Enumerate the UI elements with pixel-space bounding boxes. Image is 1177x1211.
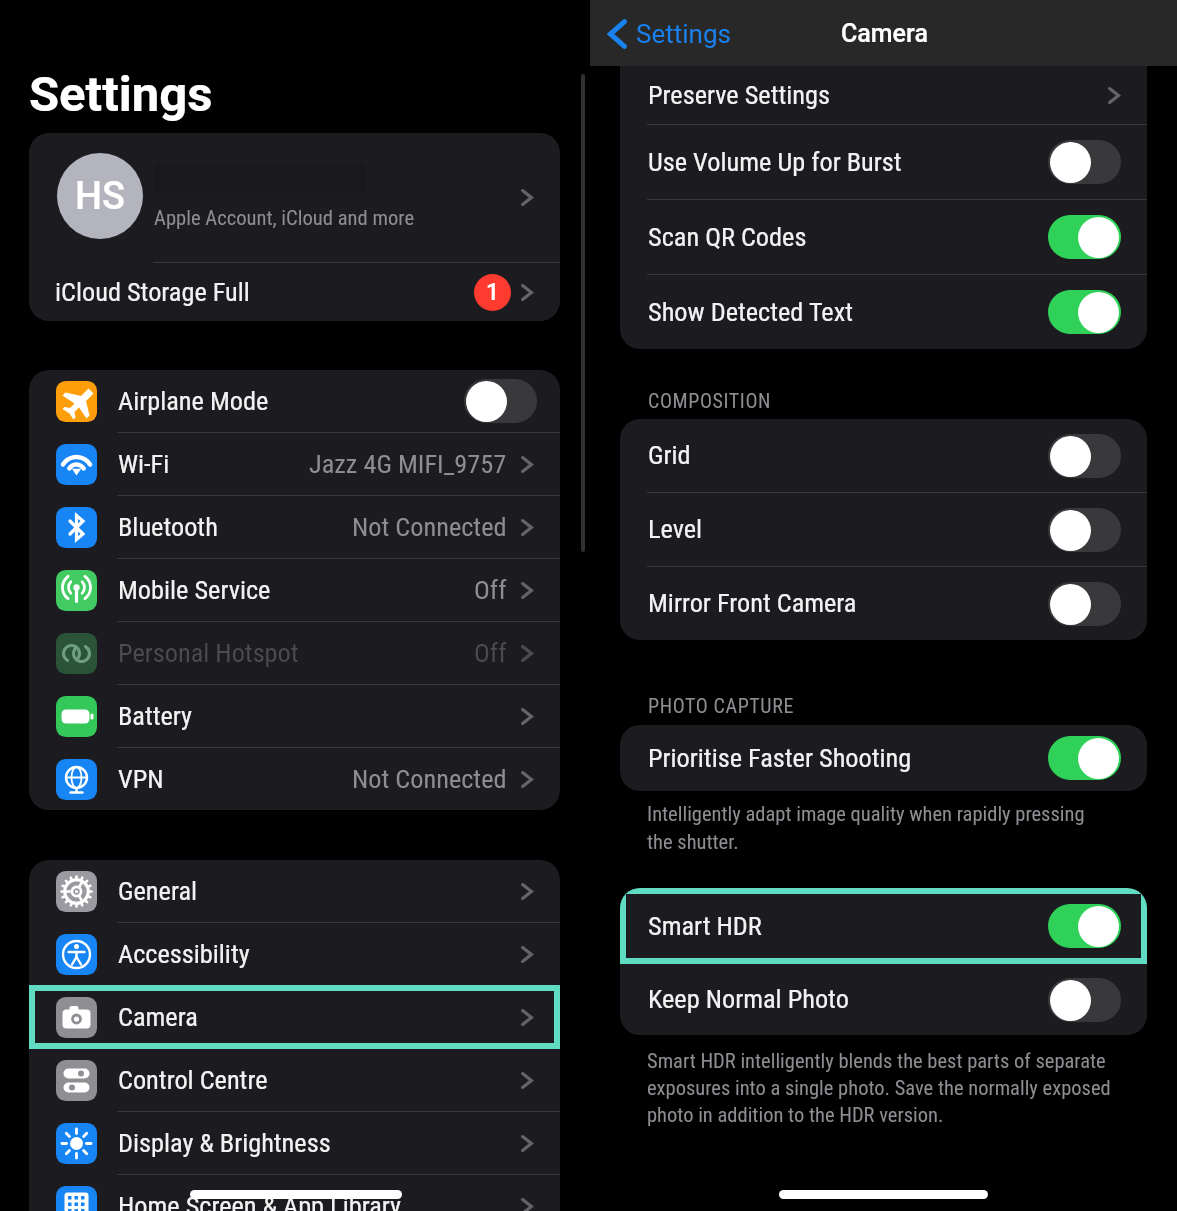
staticText: Wi-Fi <box>118 449 170 480</box>
button[interactable]: Home Screen & App Library <box>29 1175 560 1211</box>
staticText: PHOTO CAPTURE <box>648 694 794 717</box>
button[interactable]: Personal Hotspot <box>29 622 560 684</box>
staticText: Camera <box>118 1002 198 1033</box>
staticText: Display & Brightness <box>118 1128 331 1159</box>
staticText: Apple Account, iCloud and more <box>154 206 415 230</box>
button[interactable]: Smart HDR <box>620 888 1147 964</box>
button[interactable]: Settings <box>606 2 731 66</box>
button[interactable]: General <box>29 860 560 922</box>
staticText: Use Volume Up for Burst <box>648 147 902 178</box>
staticText: Prioritise Faster Shooting <box>648 743 912 774</box>
button[interactable]: Off <box>1048 508 1121 552</box>
staticText: Grid <box>648 440 691 471</box>
button[interactable]: On <box>1048 904 1121 948</box>
button[interactable]: Bluetooth <box>29 496 560 558</box>
button[interactable]: Camera <box>29 985 560 1049</box>
button[interactable]: On <box>1048 290 1121 334</box>
staticText: Off <box>474 575 507 606</box>
button[interactable]: Wi-Fi <box>29 433 560 495</box>
staticText: Mirror Front Camera <box>648 588 857 619</box>
staticText: Battery <box>118 701 193 732</box>
button[interactable]: Display & Brightness <box>29 1112 560 1174</box>
button[interactable]: iCloud Storage Full <box>29 263 560 321</box>
staticText: Scan QR Codes <box>648 222 807 253</box>
staticText: Smart HDR intelligently blends the best … <box>647 1049 1115 1127</box>
staticText: Not Connected <box>352 512 507 543</box>
staticText: Camera <box>841 19 928 48</box>
button[interactable]: Show Detected Text <box>620 275 1147 349</box>
staticText: COMPOSITION <box>648 389 772 412</box>
staticText: Settings <box>29 66 213 123</box>
staticText: Home Screen & App Library <box>118 1191 401 1211</box>
staticText: Show Detected Text <box>648 297 853 328</box>
staticText: Preserve Settings <box>648 80 830 111</box>
button[interactable]: Off <box>1048 978 1121 1022</box>
staticText: Intelligently adapt image quality when r… <box>647 802 1107 854</box>
button[interactable]: On <box>1048 215 1121 259</box>
staticText: Airplane Mode <box>118 386 269 417</box>
staticText: Keep Normal Photo <box>648 984 849 1015</box>
staticText: Level <box>648 514 703 545</box>
button[interactable]: Off <box>1048 434 1121 478</box>
staticText: Smart HDR <box>648 911 762 942</box>
button[interactable]: Off <box>1048 140 1121 184</box>
button[interactable]: Preserve Settings <box>620 66 1147 124</box>
staticText: Settings <box>636 19 731 49</box>
button[interactable]: VPN <box>29 748 560 810</box>
staticText: Jazz 4G MIFI_9757 <box>309 449 507 480</box>
staticText: Bluetooth <box>118 512 218 543</box>
button[interactable]: HS <box>29 133 560 262</box>
staticText: Mobile Service <box>118 575 271 606</box>
staticText: 1 <box>486 279 500 306</box>
button[interactable]: Mobile Service <box>29 559 560 621</box>
button[interactable]: Control Centre <box>29 1049 560 1111</box>
staticText: VPN <box>118 764 164 795</box>
button[interactable]: Level <box>620 493 1147 566</box>
staticText: Control Centre <box>118 1065 268 1096</box>
button[interactable]: Accessibility <box>29 923 560 985</box>
button[interactable]: Prioritise Faster Shooting <box>620 725 1147 791</box>
button[interactable]: On <box>1048 736 1121 780</box>
button[interactable]: Airplane Mode <box>29 370 560 432</box>
staticText: HS <box>75 174 125 219</box>
staticText: Off <box>474 638 507 669</box>
button[interactable]: Mirror Front Camera <box>620 567 1147 640</box>
staticText: Personal Hotspot <box>118 638 299 669</box>
staticText: General <box>118 876 198 907</box>
button[interactable]: Use Volume Up for Burst <box>620 125 1147 199</box>
button[interactable]: Grid <box>620 419 1147 492</box>
button[interactable]: Off <box>464 379 537 423</box>
button[interactable]: Battery <box>29 685 560 747</box>
staticText: iCloud Storage Full <box>55 277 250 308</box>
staticText: Accessibility <box>118 939 250 970</box>
button[interactable]: Keep Normal Photo <box>620 964 1147 1035</box>
button[interactable]: Off <box>1048 582 1121 626</box>
button[interactable]: Scan QR Codes <box>620 200 1147 274</box>
staticText: Not Connected <box>352 764 507 795</box>
